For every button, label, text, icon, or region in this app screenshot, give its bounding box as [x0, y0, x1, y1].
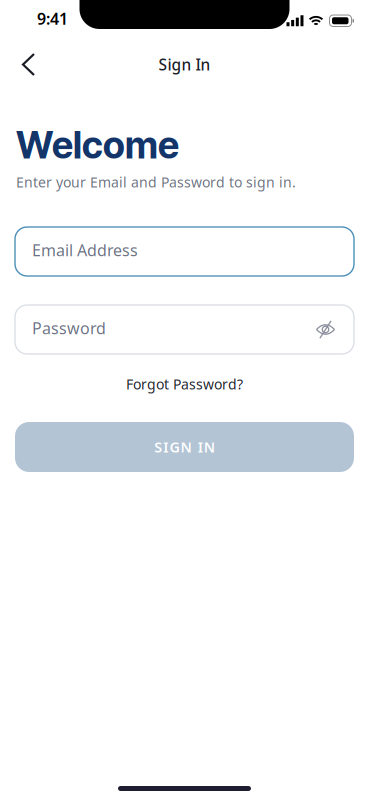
staticText: Welcome — [16, 123, 179, 167]
staticText: SIGN IN — [154, 437, 215, 456]
staticText: Enter your Email and Password to sign in… — [16, 173, 296, 191]
button[interactable]: Forgot Password? — [126, 374, 243, 394]
staticText: Forgot Password? — [126, 375, 243, 393]
button[interactable] — [0, 47, 46, 82]
staticText: 9:41 — [37, 8, 68, 29]
staticText: Email Address — [32, 239, 138, 261]
button[interactable]: Password — [15, 305, 354, 354]
button[interactable]: SIGN IN — [15, 422, 354, 472]
staticText: Sign In — [158, 54, 210, 75]
staticText: Password — [32, 317, 106, 339]
button[interactable]: Email Address — [15, 227, 354, 276]
button[interactable] — [312, 319, 338, 340]
